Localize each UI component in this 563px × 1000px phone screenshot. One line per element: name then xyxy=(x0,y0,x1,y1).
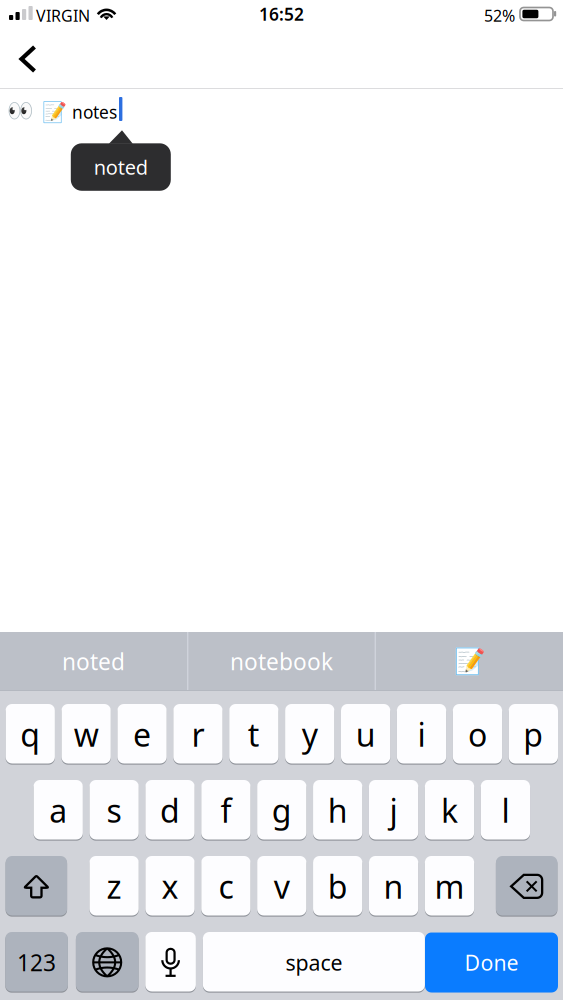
button[interactable]: k xyxy=(425,780,474,841)
staticText: o xyxy=(468,713,487,756)
button[interactable]: 123 xyxy=(5,932,68,993)
staticText: j xyxy=(390,789,398,832)
staticText: z xyxy=(107,865,122,908)
staticText: 📝 xyxy=(453,647,485,676)
button[interactable]: d xyxy=(145,780,195,841)
button[interactable]: Back xyxy=(2,32,54,86)
button[interactable]: g xyxy=(257,780,306,841)
button[interactable]: h xyxy=(313,780,362,841)
staticText: 123 xyxy=(17,947,56,977)
staticText: e xyxy=(133,713,151,756)
staticText: s xyxy=(107,789,122,832)
button[interactable]: j xyxy=(369,780,418,841)
staticText: n xyxy=(384,865,404,908)
button[interactable]: Emoji suggestion xyxy=(376,632,563,691)
button[interactable]: s xyxy=(89,780,139,841)
staticText: p xyxy=(523,713,543,756)
staticText: c xyxy=(218,865,233,908)
button[interactable]: t xyxy=(229,704,278,765)
button[interactable]: f xyxy=(201,780,250,841)
staticText: q xyxy=(20,713,40,756)
staticText: v xyxy=(274,865,290,908)
button[interactable]: i xyxy=(397,704,446,765)
button[interactable]: l xyxy=(481,780,530,841)
staticText: noted xyxy=(62,646,125,676)
button[interactable]: y xyxy=(285,704,334,765)
staticText: space xyxy=(285,948,342,976)
staticText: 52% xyxy=(484,5,515,26)
staticText: notebook xyxy=(230,646,333,676)
staticText: k xyxy=(441,789,458,832)
button[interactable]: Done xyxy=(425,932,558,992)
staticText: Done xyxy=(464,948,518,977)
button[interactable]: r xyxy=(173,704,223,765)
button[interactable]: x xyxy=(145,856,195,917)
staticText: l xyxy=(501,789,509,832)
button[interactable]: q xyxy=(6,704,55,765)
button[interactable]: m xyxy=(425,856,474,917)
staticText: w xyxy=(74,713,99,756)
button[interactable]: e xyxy=(117,704,167,765)
staticText: h xyxy=(328,789,348,832)
staticText: g xyxy=(272,789,292,832)
button[interactable]: p xyxy=(509,704,558,765)
button[interactable]: Dictate xyxy=(145,932,196,993)
staticText: f xyxy=(220,789,231,832)
staticText: b xyxy=(328,865,348,908)
button[interactable]: Shift xyxy=(6,856,67,917)
staticText: VIRGIN xyxy=(36,5,90,26)
staticText: 👀 xyxy=(7,99,34,123)
button[interactable]: Next keyboard xyxy=(76,932,138,993)
button[interactable]: n xyxy=(369,856,418,917)
button[interactable]: v xyxy=(257,856,306,917)
button[interactable]: space xyxy=(203,932,425,993)
button[interactable]: c xyxy=(201,856,250,917)
staticText: m xyxy=(434,865,464,908)
staticText: notes xyxy=(72,100,117,123)
button[interactable]: a xyxy=(33,780,83,841)
button[interactable]: z xyxy=(89,856,139,917)
staticText: 16:52 xyxy=(259,2,304,25)
staticText: x xyxy=(161,865,178,908)
button[interactable]: w xyxy=(61,704,111,765)
staticText: t xyxy=(248,713,260,756)
staticText: noted xyxy=(94,154,148,180)
button[interactable]: b xyxy=(313,856,362,917)
staticText: 📝 xyxy=(42,101,67,123)
staticText: d xyxy=(160,789,180,832)
button[interactable]: o xyxy=(453,704,502,765)
staticText: r xyxy=(191,713,204,756)
staticText: i xyxy=(418,713,426,756)
staticText: y xyxy=(302,713,318,756)
button[interactable]: notebook xyxy=(188,632,375,691)
button[interactable]: noted xyxy=(0,632,187,691)
staticText: u xyxy=(356,713,376,756)
button[interactable]: Delete xyxy=(496,856,557,917)
staticText: a xyxy=(49,789,67,832)
button[interactable]: u xyxy=(341,704,390,765)
